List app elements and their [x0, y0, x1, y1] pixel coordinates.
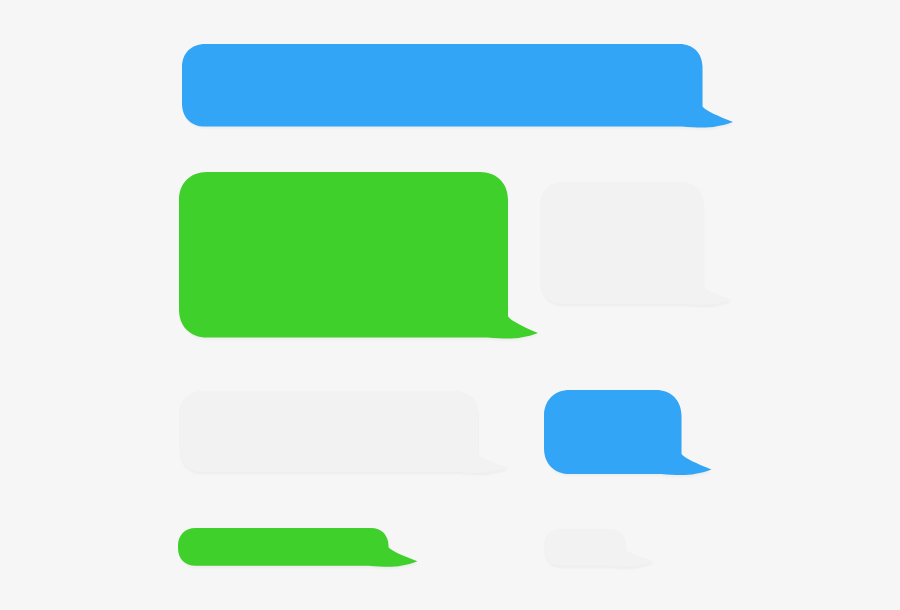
button[interactable]: Blue message bubble — [544, 390, 712, 478]
button[interactable]: Green message bubble — [178, 528, 418, 570]
button[interactable]: Green message bubble — [179, 172, 538, 342]
button[interactable]: Blue message bubble — [182, 44, 733, 131]
